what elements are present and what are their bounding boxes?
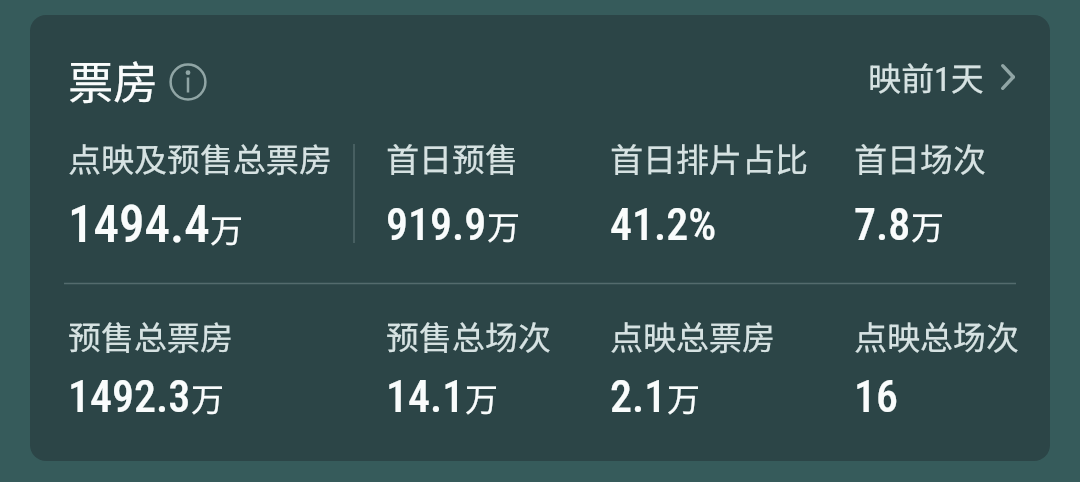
button[interactable]: Box office info [168, 60, 208, 100]
button[interactable]: 点映总场次 [854, 312, 1019, 423]
staticText: 14.1 [386, 371, 465, 423]
staticText: 首日场次 [854, 134, 986, 182]
staticText: 首日排片占比 [610, 134, 808, 182]
button[interactable]: 点映总票房 [610, 312, 775, 423]
staticText: 919.9 [386, 199, 487, 251]
staticText: 万 [465, 374, 498, 422]
staticText: 点映及预售总票房 [68, 134, 332, 182]
staticText: 万 [487, 202, 520, 250]
staticText: 1492.3 [68, 371, 191, 423]
staticText: 7.8 [854, 199, 911, 251]
staticText: 万 [911, 202, 944, 250]
staticText: 41.2% [610, 199, 717, 251]
button[interactable]: 预售总场次 [386, 312, 551, 423]
staticText: 预售总票房 [68, 312, 233, 360]
button[interactable]: 票房 [68, 47, 208, 112]
staticText: 万 [667, 374, 700, 422]
staticText: 万 [191, 374, 224, 422]
staticText: 2.1 [610, 371, 667, 423]
button[interactable]: 首日场次 [854, 134, 986, 251]
staticText: 16 [854, 371, 898, 423]
staticText: 首日预售 [386, 134, 518, 182]
button[interactable]: 点映及预售总票房 [68, 134, 332, 255]
button[interactable]: 首日排片占比 [610, 134, 808, 251]
staticText: 点映总场次 [854, 312, 1019, 360]
staticText: 万 [210, 205, 243, 253]
button[interactable]: 映前1天 [868, 53, 1015, 101]
staticText: 映前1天 [868, 53, 984, 101]
staticText: 点映总票房 [610, 312, 775, 360]
button[interactable]: 首日预售 [386, 134, 520, 251]
staticText: 预售总场次 [386, 312, 551, 360]
button[interactable]: 预售总票房 [68, 312, 233, 423]
staticText: 票房 [68, 47, 159, 112]
staticText: 1494.4 [68, 195, 210, 255]
